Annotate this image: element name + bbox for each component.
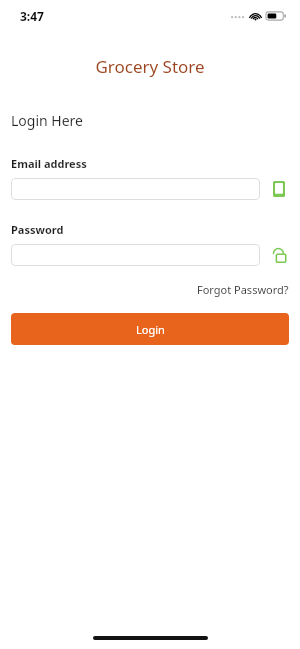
staticText: Grocery Store — [0, 55, 300, 78]
button[interactable]: Show password — [269, 245, 289, 265]
staticText: 3:47 — [20, 8, 44, 24]
staticText: Login — [136, 322, 165, 337]
button[interactable]: Login — [11, 313, 289, 345]
button[interactable]: Forgot Password? — [197, 282, 300, 297]
button[interactable] — [11, 244, 260, 266]
staticText: Password — [11, 222, 64, 237]
staticText: Email address — [11, 156, 87, 171]
button[interactable]: Mobile — [269, 179, 289, 199]
staticText: Login Here — [11, 111, 83, 130]
button[interactable] — [11, 178, 260, 200]
